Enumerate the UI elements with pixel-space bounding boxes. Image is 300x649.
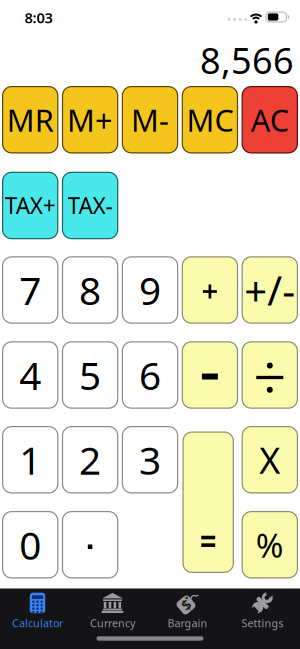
button[interactable]: MR	[2, 86, 58, 153]
staticText: 8	[79, 264, 101, 316]
staticText: X	[259, 436, 280, 484]
button[interactable]: Currency	[76, 590, 149, 632]
button[interactable]: Equals	[182, 431, 234, 573]
staticText: 8,566	[200, 36, 294, 84]
button[interactable]: M-	[122, 86, 178, 153]
button[interactable]: Decimal point	[62, 511, 118, 578]
staticText: %	[256, 523, 284, 567]
staticText: 6	[139, 349, 161, 401]
staticText: 5	[79, 349, 101, 401]
button[interactable]: 3	[122, 426, 178, 493]
button[interactable]: 2	[62, 426, 118, 493]
staticText: TAX+	[5, 190, 56, 220]
button[interactable]: 9	[122, 256, 178, 324]
button[interactable]: M+	[62, 86, 118, 153]
staticText: M+	[67, 99, 113, 140]
staticText: M-	[131, 99, 169, 140]
staticText: 8:03	[24, 8, 52, 27]
button[interactable]: Subtract	[182, 341, 238, 409]
button[interactable]: Settings	[226, 590, 299, 632]
button[interactable]: AC	[242, 86, 298, 153]
staticText: Bargain	[167, 616, 207, 630]
button[interactable]: TAX+	[2, 172, 58, 239]
staticText: MC	[186, 99, 233, 140]
button[interactable]: 5	[62, 341, 118, 409]
button[interactable]: Divide	[242, 341, 298, 409]
button[interactable]: %	[242, 511, 298, 578]
button[interactable]: 7	[2, 256, 58, 324]
staticText: Currency	[90, 616, 135, 630]
staticText: Calculator	[12, 616, 63, 630]
staticText: 2	[79, 434, 101, 485]
button[interactable]: 8	[62, 256, 118, 324]
button[interactable]: $	[151, 590, 224, 632]
staticText: 7	[19, 264, 41, 316]
staticText: 1	[19, 434, 41, 485]
button[interactable]: +/-	[242, 256, 298, 324]
staticText: TAX-	[68, 190, 113, 220]
staticText: 0	[19, 519, 41, 570]
button[interactable]: Add	[182, 256, 238, 324]
staticText: +/-	[244, 263, 295, 316]
staticText: MR	[7, 99, 54, 140]
staticText: 3	[139, 434, 161, 485]
button[interactable]: 1	[2, 426, 58, 493]
staticText: Settings	[241, 616, 283, 630]
button[interactable]: TAX-	[62, 172, 118, 239]
staticText: 9	[139, 264, 161, 316]
button[interactable]: 0	[2, 511, 58, 578]
button[interactable]: 4	[2, 341, 58, 409]
button[interactable]: Calculator	[1, 590, 74, 632]
staticText: AC	[251, 99, 289, 140]
button[interactable]: X	[242, 426, 298, 493]
button[interactable]: MC	[182, 86, 238, 153]
button[interactable]: 6	[122, 341, 178, 409]
staticText: 4	[19, 349, 41, 401]
staticText: $	[182, 595, 190, 615]
